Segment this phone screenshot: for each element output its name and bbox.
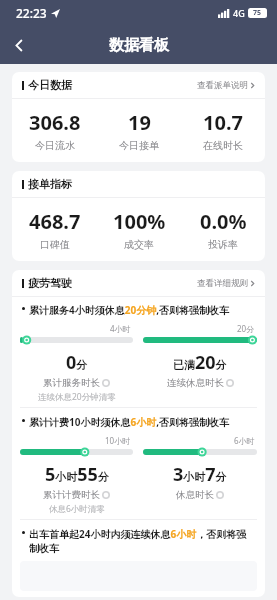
staticText: 0分 <box>66 350 88 375</box>
staticText: 22:23 <box>16 5 47 21</box>
staticText: 100% <box>113 208 166 235</box>
staticText: 今日数据 <box>28 78 72 92</box>
staticText: 3小时7分 <box>173 462 227 487</box>
staticText: 查看详细规则 <box>197 278 248 289</box>
staticText: 0.0% <box>200 208 247 235</box>
button[interactable]: 说明 <box>102 379 110 387</box>
staticText: 累计服务4小时须休息20分钟,否则将强制收车 <box>29 303 230 317</box>
staticText: 累计计费10小时须休息6小时,否则将强制收车 <box>29 415 230 429</box>
staticText: 数据看板 <box>109 36 169 55</box>
staticText: 10.7 <box>203 109 243 136</box>
staticText: 疲劳驾驶 <box>28 276 72 290</box>
staticText: 休息6小时清零 <box>49 503 105 515</box>
staticText: 今日接单 <box>119 139 159 152</box>
staticText: 已满20分 <box>173 350 227 375</box>
button[interactable]: 查看详细规则 <box>197 278 255 289</box>
staticText: 在线时长 <box>203 139 243 152</box>
button[interactable]: 查看派单说明 <box>197 80 255 91</box>
staticText: 19 <box>128 109 151 136</box>
button[interactable]: 说明 <box>102 491 110 499</box>
staticText: 累计服务时长 <box>43 377 100 389</box>
button[interactable]: 说明 <box>226 379 234 387</box>
staticText: 5小时55分 <box>45 462 109 487</box>
staticText: 连续休息20分钟清零 <box>38 391 116 403</box>
staticText: 10小时 <box>105 435 131 446</box>
staticText: 468.7 <box>29 208 81 235</box>
staticText: 投诉率 <box>208 238 238 251</box>
staticText: 接单指标 <box>28 177 72 191</box>
staticText: 成交率 <box>124 238 154 251</box>
button[interactable]: 说明 <box>216 491 224 499</box>
staticText: 查看派单说明 <box>197 80 248 91</box>
staticText: 口碑值 <box>40 238 70 251</box>
staticText: 累计计费时长 <box>43 489 100 501</box>
staticText: 4小时 <box>110 323 131 334</box>
staticText: 6小时 <box>234 435 255 446</box>
staticText: 休息时长 <box>176 489 214 501</box>
staticText: 今日流水 <box>35 139 75 152</box>
staticText: 75 <box>253 8 262 18</box>
staticText: 306.8 <box>29 109 81 136</box>
staticText: 20分 <box>237 323 255 334</box>
staticText: 出车首单起24小时内须连续休息6小时，否则将强制收车 <box>29 527 255 555</box>
staticText: 4G <box>233 7 245 19</box>
staticText: 连续休息时长 <box>167 377 224 389</box>
button[interactable]: Back <box>0 26 38 64</box>
